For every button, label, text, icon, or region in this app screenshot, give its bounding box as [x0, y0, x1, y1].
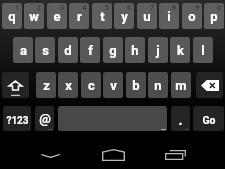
button[interactable]: u: [137, 3, 157, 29]
staticText: 6: [127, 3, 132, 11]
staticText: 2: [37, 3, 42, 11]
staticText: 8: [172, 3, 177, 11]
button[interactable]: Recent apps: [162, 143, 189, 167]
staticText: 9: [195, 3, 200, 11]
button[interactable]: z: [36, 72, 56, 98]
staticText: n: [154, 78, 162, 93]
button[interactable]: x: [58, 72, 78, 98]
staticText: Go: [202, 114, 216, 126]
staticText: 7: [150, 3, 155, 11]
staticText: v: [110, 78, 117, 93]
staticText: x: [65, 78, 72, 93]
button[interactable]: k: [170, 37, 190, 63]
button[interactable]: r: [69, 3, 89, 29]
staticText: ?123: [6, 115, 29, 127]
button[interactable]: ?123: [3, 106, 31, 131]
button[interactable]: e: [47, 3, 67, 29]
staticText: d: [64, 43, 72, 58]
button[interactable]: f: [80, 37, 100, 63]
button[interactable]: g: [103, 37, 123, 63]
button[interactable]: n: [148, 72, 168, 98]
button[interactable]: i: [159, 3, 179, 29]
button[interactable]: d: [58, 37, 78, 63]
staticText: s: [42, 43, 49, 58]
staticText: p: [210, 9, 218, 24]
staticText: i: [167, 9, 171, 24]
staticText: y: [121, 9, 128, 24]
staticText: a: [20, 43, 27, 58]
button[interactable]: m: [171, 72, 191, 98]
staticText: z: [43, 78, 50, 93]
staticText: .: [178, 112, 183, 128]
button[interactable]: p: [204, 3, 224, 29]
button[interactable]: l: [193, 37, 213, 63]
button[interactable]: Backspace: [196, 72, 223, 98]
button[interactable]: c: [81, 72, 101, 98]
button[interactable]: Shift: [2, 72, 29, 98]
staticText: r: [77, 9, 82, 24]
staticText: c: [88, 78, 95, 93]
button[interactable]: o: [182, 3, 202, 29]
staticText: m: [175, 78, 187, 93]
button[interactable]: v: [103, 72, 123, 98]
staticText: 4: [82, 3, 87, 11]
button[interactable]: w: [24, 3, 44, 29]
button[interactable]: a: [13, 37, 33, 63]
button[interactable]: .: [171, 106, 190, 131]
button[interactable]: Home: [100, 143, 127, 167]
staticText: 5: [105, 3, 110, 11]
staticText: 0: [217, 3, 222, 11]
button[interactable]: t: [92, 3, 112, 29]
staticText: u: [143, 9, 151, 24]
staticText: o: [188, 9, 196, 24]
button[interactable]: @: [35, 106, 54, 131]
staticText: j: [156, 43, 160, 58]
button[interactable]: Space: [58, 106, 167, 131]
staticText: k: [177, 43, 184, 58]
button[interactable]: Go: [193, 106, 224, 131]
button[interactable]: h: [125, 37, 145, 63]
button[interactable]: q: [2, 3, 22, 29]
button[interactable]: b: [126, 72, 146, 98]
staticText: l: [201, 43, 205, 58]
staticText: f: [88, 43, 93, 58]
button[interactable]: y: [114, 3, 134, 29]
staticText: w: [29, 9, 39, 24]
button[interactable]: j: [148, 37, 168, 63]
staticText: t: [100, 9, 105, 24]
staticText: g: [109, 43, 117, 58]
staticText: h: [131, 43, 139, 58]
staticText: e: [53, 9, 61, 24]
staticText: 3: [60, 3, 65, 11]
button[interactable]: Hide keyboard: [36, 145, 64, 167]
button[interactable]: s: [35, 37, 55, 63]
staticText: 1: [15, 3, 20, 11]
staticText: @: [39, 111, 51, 126]
staticText: q: [8, 9, 16, 24]
staticText: b: [132, 78, 140, 93]
